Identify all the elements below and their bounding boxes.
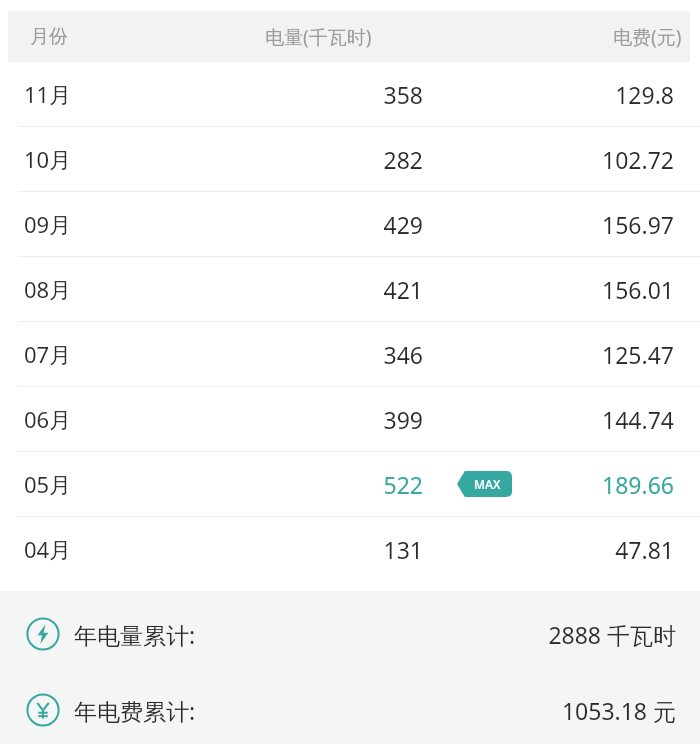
staticText: 144.74	[602, 404, 674, 435]
staticText: 06月	[24, 404, 72, 434]
staticText: 10月	[24, 144, 72, 174]
staticText: 156.01	[602, 274, 674, 305]
staticText: 129.8	[615, 79, 674, 110]
staticText: 125.47	[602, 339, 674, 370]
button[interactable]: 07月	[0, 322, 700, 386]
staticText: 04月	[24, 534, 72, 564]
other: Electricity usage	[26, 617, 60, 651]
staticText: 年电量累计:	[74, 619, 196, 650]
staticText: 1053.18 元	[561, 695, 676, 726]
button[interactable]: 08月	[0, 257, 700, 321]
staticText: 522	[383, 469, 423, 500]
staticText: 09月	[24, 209, 72, 239]
staticText: 2888 千瓦时	[548, 619, 676, 650]
staticText: 电费(元)	[613, 24, 682, 50]
staticText: 月份	[30, 25, 68, 49]
staticText: 11月	[24, 79, 72, 109]
staticText: 189.66	[602, 469, 674, 500]
button[interactable]: 04月	[0, 517, 700, 581]
staticText: 05月	[24, 469, 72, 499]
staticText: MAX	[474, 476, 501, 492]
other: Electricity cost	[26, 693, 60, 727]
staticText: 358	[383, 79, 423, 110]
staticText: 07月	[24, 339, 72, 369]
staticText: 102.72	[602, 144, 674, 175]
button[interactable]: 09月	[0, 192, 700, 256]
staticText: 电量(千瓦时)	[265, 24, 372, 50]
staticText: 282	[383, 144, 423, 175]
button[interactable]: Electricity usage	[0, 609, 700, 659]
staticText: 156.97	[602, 209, 674, 240]
staticText: 346	[383, 339, 423, 370]
button[interactable]: 06月	[0, 387, 700, 451]
button[interactable]: 11月	[0, 62, 700, 126]
staticText: 131	[383, 534, 423, 565]
staticText: 429	[383, 209, 423, 240]
staticText: 421	[383, 274, 423, 305]
button[interactable]: 10月	[0, 127, 700, 191]
button[interactable]: 05月	[0, 452, 700, 516]
staticText: 47.81	[615, 534, 674, 565]
staticText: 年电费累计:	[74, 695, 196, 726]
staticText: 08月	[24, 274, 72, 304]
button[interactable]: Electricity cost	[0, 685, 700, 735]
staticText: 399	[383, 404, 423, 435]
